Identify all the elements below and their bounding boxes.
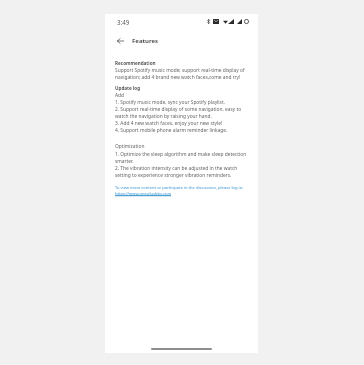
staticText: Features [132, 37, 159, 45]
staticText: Update log Add 1. Spotify music mode, sy… [115, 85, 242, 133]
staticText: https://www.oneplusbbs.com [115, 191, 172, 197]
staticText: 3:49 [117, 18, 130, 26]
staticText: Recommendation Support Spotify music mod… [115, 60, 245, 80]
staticText: Optimization 1. Optimize the sleep algor… [115, 143, 247, 178]
staticText: To view more content or participate in t… [115, 185, 244, 191]
button[interactable]: https://www.oneplusbbs.com [115, 191, 172, 197]
button[interactable]: Back [114, 34, 127, 47]
